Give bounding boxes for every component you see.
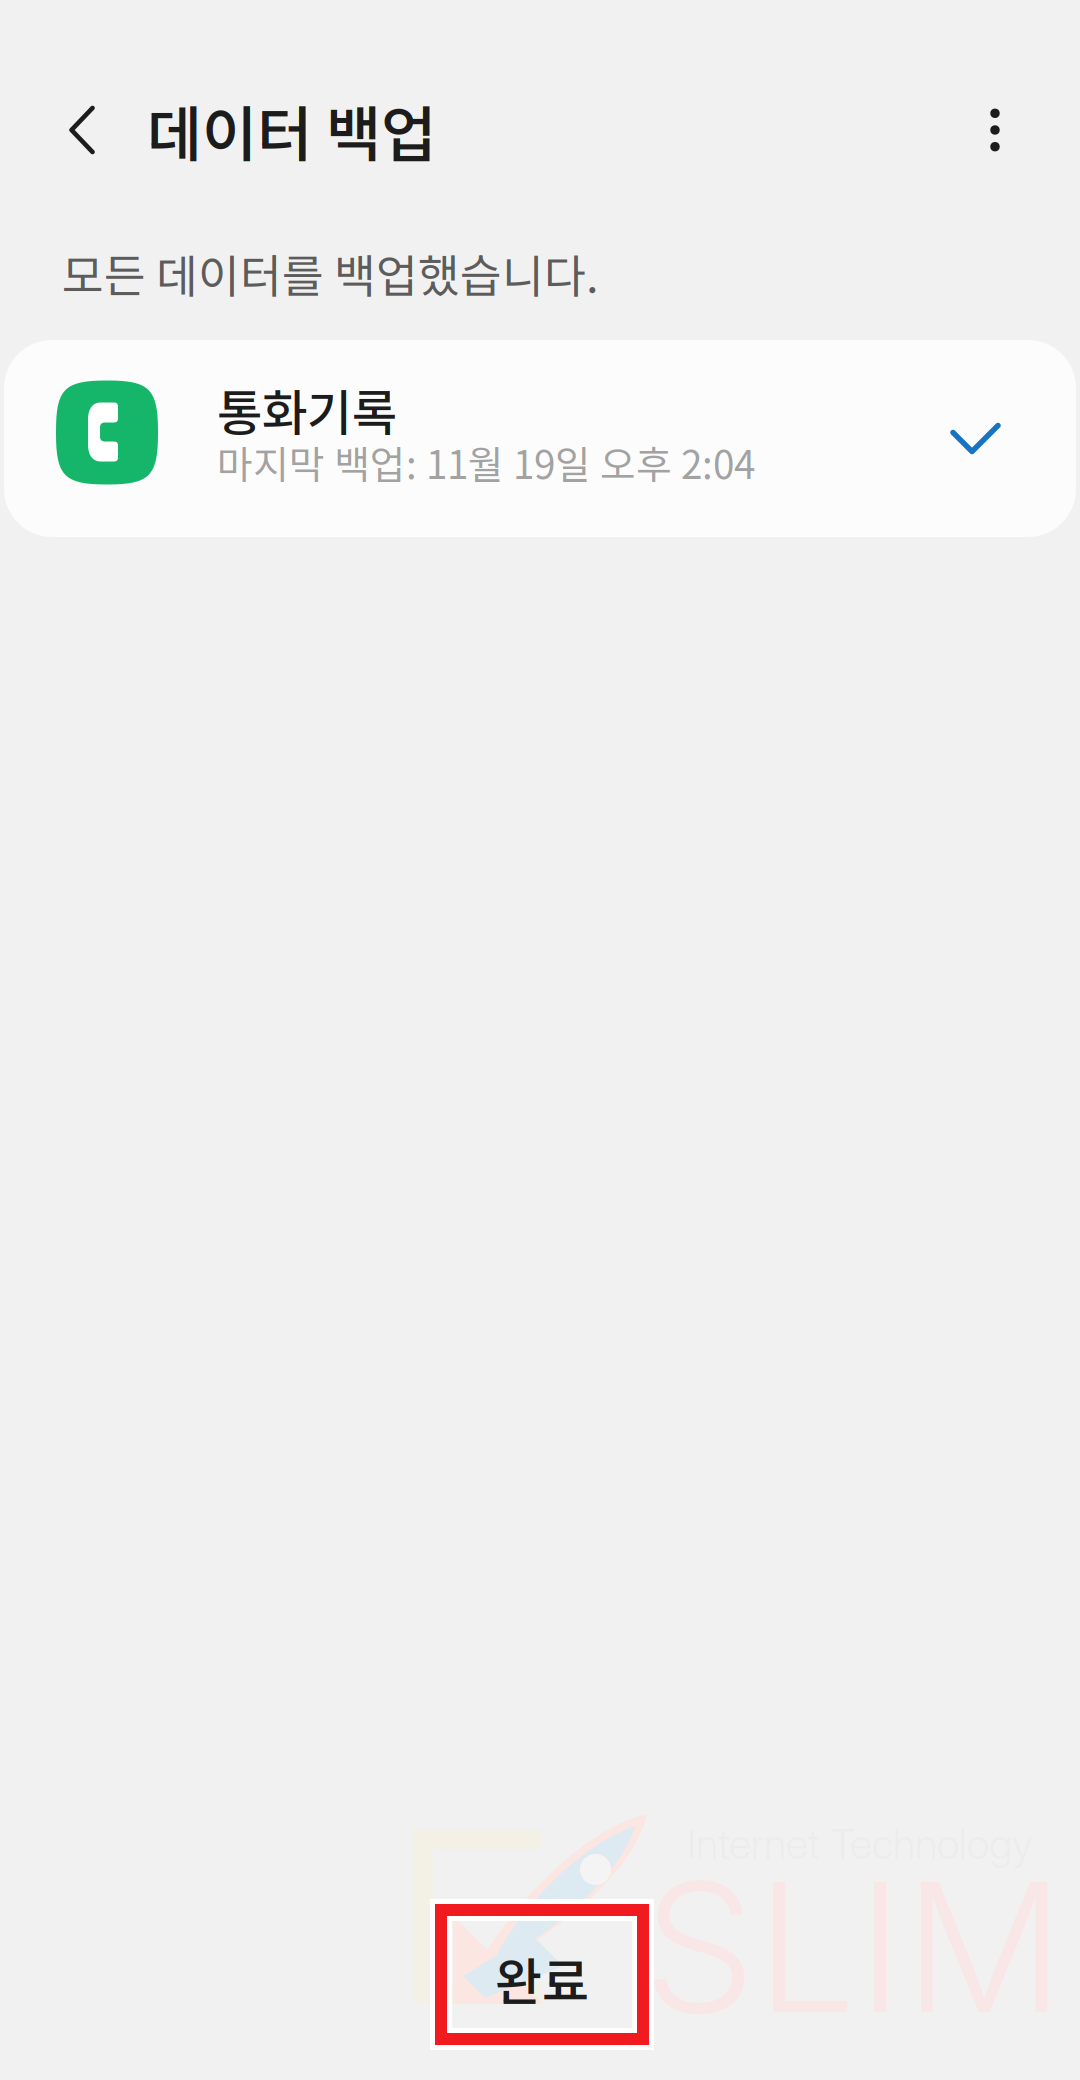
staticText: 데이터 백업 [147,87,436,173]
staticText: 완료 [495,1942,589,2015]
staticText: 마지막 백업: 11월 19일 오후 2:04 [217,434,755,490]
button[interactable]: 완료 [439,1910,641,2039]
button[interactable]: 통화기록 [4,340,1076,537]
staticText: 통화기록 [217,374,397,445]
staticText: 모든 데이터를 백업했습니다. [62,240,599,306]
button[interactable]: Back [35,65,129,195]
staticText: SLIM [643,1839,1065,2055]
button[interactable]: More options [950,65,1040,195]
